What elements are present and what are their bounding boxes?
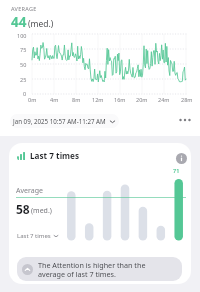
staticText: AVERAGE: [11, 5, 37, 12]
staticText: 12m: [92, 96, 104, 103]
staticText: 58: [16, 201, 30, 217]
staticText: 28m: [181, 96, 193, 103]
staticText: (med.): [31, 206, 52, 216]
staticText: 71: [173, 167, 180, 174]
staticText: 0m: [28, 96, 37, 103]
staticText: 0: [23, 90, 27, 97]
button[interactable]: Jan 09, 2025 10:57 AM-11:27 AM: [10, 114, 119, 128]
staticText: 16m: [114, 96, 126, 103]
staticText: 8m: [72, 96, 81, 103]
button[interactable]: Info: [171, 148, 191, 168]
staticText: (med.): [28, 18, 54, 30]
staticText: 75: [20, 46, 27, 53]
button[interactable]: Last 7 times: [14, 230, 62, 242]
staticText: Last 7 times: [30, 150, 80, 161]
button[interactable]: Last 7 times: [17, 150, 80, 161]
staticText: 100: [17, 32, 27, 39]
button[interactable]: More options: [176, 111, 194, 129]
staticText: 25: [20, 76, 27, 83]
staticText: 20m: [136, 96, 148, 103]
button[interactable]: The Attention is higher than the average…: [17, 257, 182, 281]
staticText: Average: [16, 186, 43, 196]
staticText: 24m: [158, 96, 170, 103]
staticText: Jan 09, 2025 10:57 AM-11:27 AM: [13, 117, 106, 125]
staticText: 50: [20, 61, 27, 68]
staticText: Last 7 times: [17, 232, 51, 240]
staticText: 4m: [50, 96, 59, 103]
staticText: 44: [11, 13, 27, 31]
staticText: The Attention is higher than the average…: [38, 260, 150, 279]
